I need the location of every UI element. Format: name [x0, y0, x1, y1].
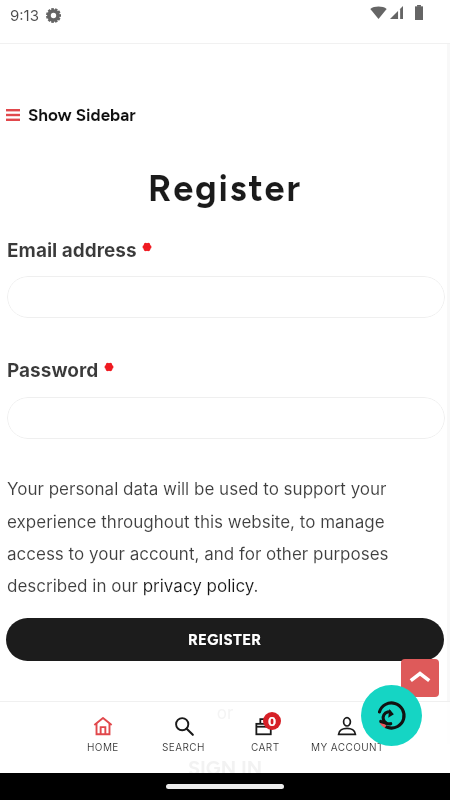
staticText: Your personal data will be used to suppo…	[7, 479, 398, 596]
staticText: Register	[0, 167, 450, 210]
staticText: SIGN IN	[0, 756, 450, 780]
button[interactable]: Scroll to top	[401, 659, 439, 697]
button[interactable]: 0	[224, 702, 306, 761]
button[interactable]: Support chat	[361, 685, 422, 746]
staticText: Show Sidebar	[28, 105, 136, 125]
staticText: CART	[251, 741, 280, 753]
staticText: 9:13	[10, 6, 39, 24]
button[interactable]: SEARCH	[143, 702, 224, 761]
staticText: REGISTER	[188, 631, 262, 649]
staticText: Email address	[7, 239, 137, 262]
button[interactable]: REGISTER	[6, 618, 444, 661]
staticText: Password	[7, 359, 99, 382]
button[interactable]	[7, 397, 445, 439]
staticText: SEARCH	[162, 741, 205, 753]
button[interactable]: HOME	[62, 702, 143, 761]
staticText: or	[0, 703, 450, 724]
staticText: MY ACCOUNT	[311, 741, 384, 753]
staticText: HOME	[87, 741, 119, 753]
staticText: 0	[268, 714, 277, 729]
button[interactable]: Show Sidebar	[0, 103, 136, 127]
button[interactable]	[7, 276, 445, 318]
button[interactable]: MY ACCOUNT	[306, 702, 388, 761]
